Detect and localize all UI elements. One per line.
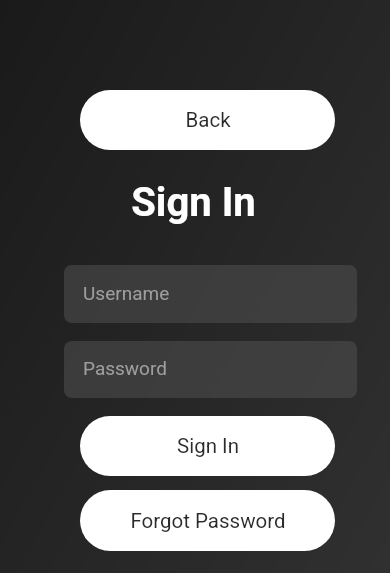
staticText: Username [83, 282, 170, 304]
button[interactable]: Password [64, 341, 357, 398]
staticText: Password [83, 357, 167, 379]
staticText: Sign In [131, 179, 256, 226]
button[interactable]: Back [80, 90, 335, 150]
staticText: Forgot Password [130, 509, 286, 533]
staticText: Sign In [177, 434, 239, 458]
staticText: Back [185, 108, 231, 132]
button[interactable]: Sign In [80, 416, 335, 476]
button[interactable]: Username [64, 265, 357, 323]
button[interactable]: Forgot Password [80, 490, 335, 551]
